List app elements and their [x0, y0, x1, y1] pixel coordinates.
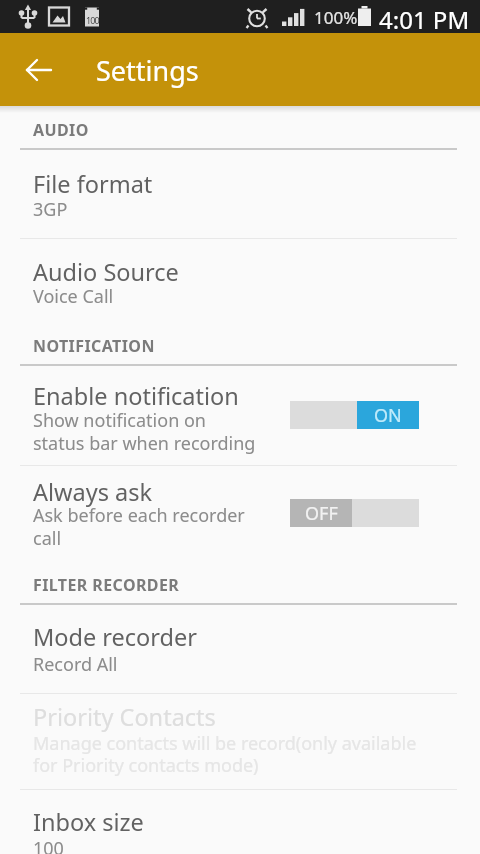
staticText: Enable notification — [33, 380, 239, 412]
staticText: NOTIFICATION — [33, 335, 155, 357]
staticText: Mode recorder — [33, 621, 197, 653]
button[interactable]: Always ask — [0, 465, 480, 563]
staticText: 100 — [33, 836, 64, 854]
staticText: Voice Call — [33, 284, 114, 309]
button[interactable]: Priority Contacts — [0, 693, 480, 789]
staticText: 100 — [86, 14, 99, 26]
staticText: 4:01 PM — [379, 3, 470, 36]
staticText: Inbox size — [33, 806, 144, 838]
button[interactable]: Audio Source — [0, 238, 480, 328]
staticText: Show notification on status bar when rec… — [33, 408, 256, 455]
staticText: Settings — [96, 52, 199, 89]
staticText: AUDIO — [33, 119, 89, 141]
button[interactable]: Enable notification — [0, 365, 480, 465]
staticText: Ask before each recorder call — [33, 503, 245, 550]
button[interactable]: Always ask, off — [290, 499, 419, 527]
staticText: Audio Source — [33, 256, 179, 288]
staticText: Priority Contacts — [33, 701, 216, 733]
staticText: 100% — [314, 6, 358, 29]
button[interactable]: Enable notification, on — [290, 401, 419, 429]
button[interactable]: Mode recorder — [0, 604, 480, 693]
staticText: ON — [374, 403, 402, 428]
button[interactable]: File format — [0, 149, 480, 238]
staticText: 3GP — [33, 197, 68, 222]
staticText: FILTER RECORDER — [33, 574, 180, 596]
button[interactable]: Inbox size — [0, 789, 480, 854]
staticText: File format — [33, 168, 153, 200]
staticText: Manage contacts will be record(only avai… — [33, 731, 417, 778]
button[interactable]: Back — [14, 45, 64, 95]
staticText: Always ask — [33, 476, 153, 508]
staticText: OFF — [305, 501, 338, 526]
staticText: Record All — [33, 652, 118, 677]
